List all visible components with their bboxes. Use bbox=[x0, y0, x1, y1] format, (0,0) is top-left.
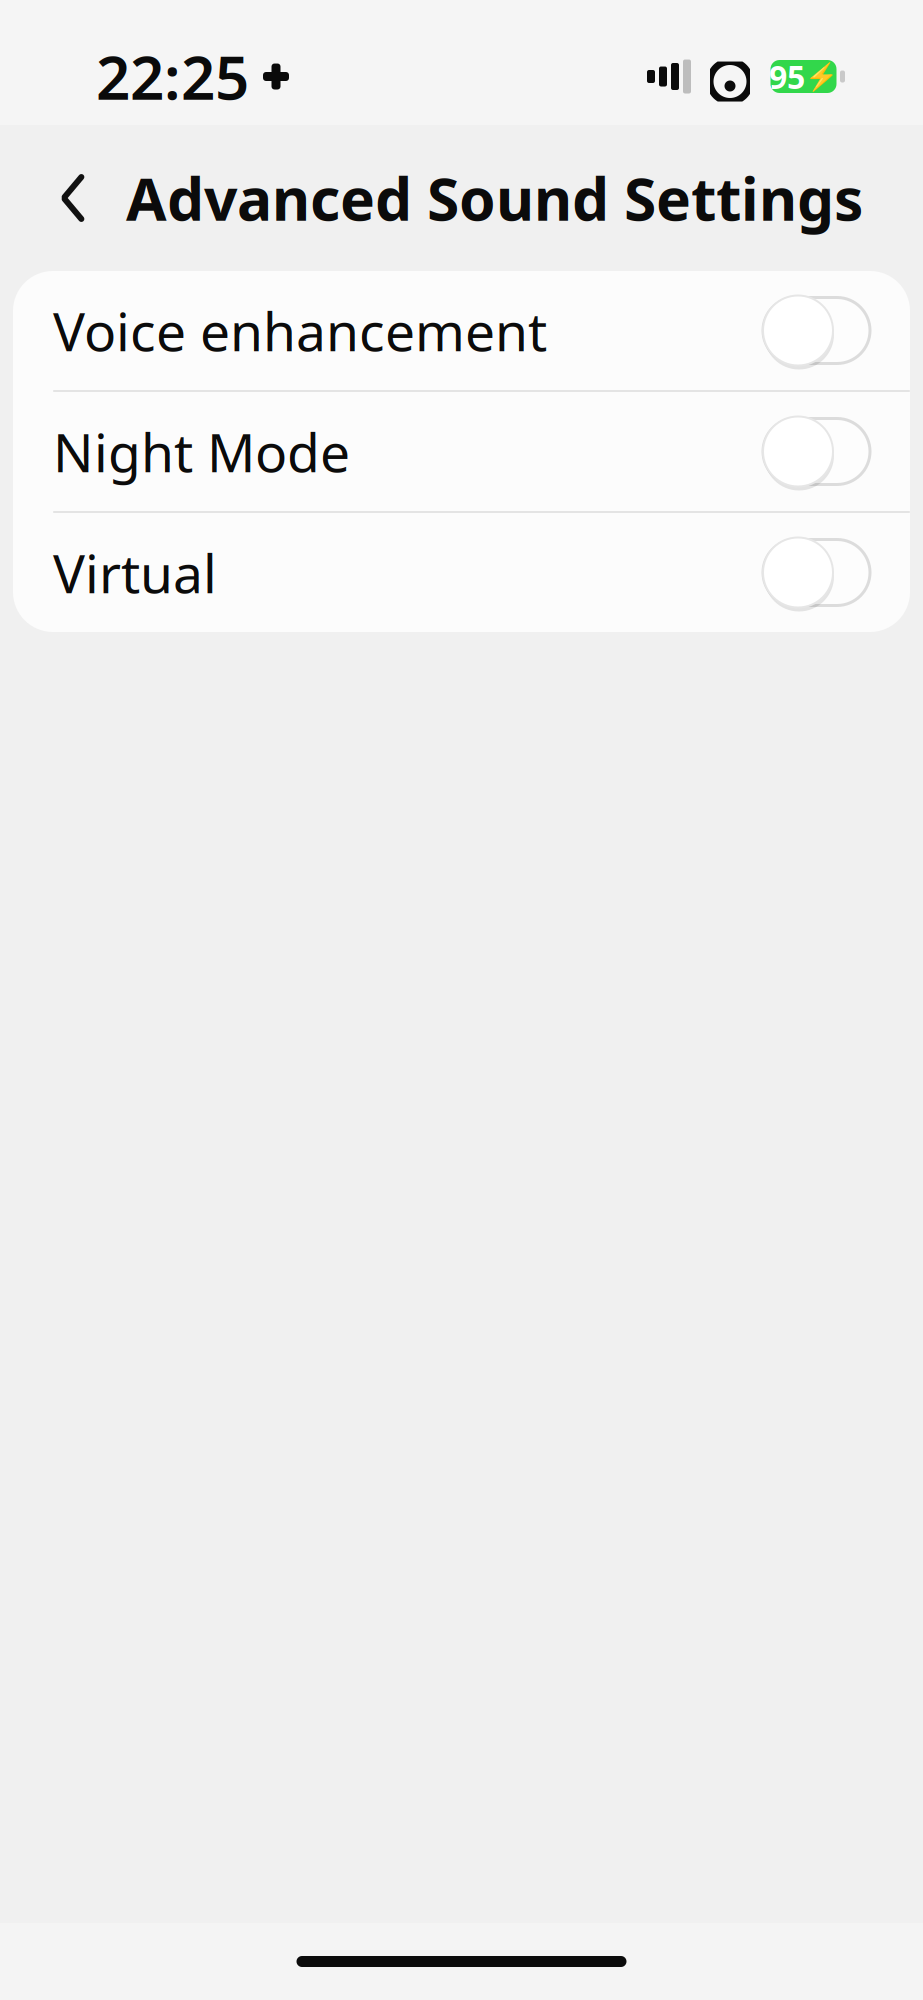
staticText: Voice enhancement bbox=[53, 295, 547, 366]
button[interactable]: Back bbox=[36, 161, 110, 235]
button[interactable]: Virtual bbox=[13, 513, 910, 632]
button[interactable]: Night Mode bbox=[13, 392, 910, 511]
staticText: 95 bbox=[769, 55, 805, 98]
staticText: 22:25 bbox=[96, 37, 249, 116]
staticText: Virtual bbox=[53, 537, 217, 608]
staticText: Advanced Sound Settings bbox=[126, 159, 863, 237]
button[interactable]: Voice enhancement bbox=[13, 271, 910, 390]
staticText: ⚡ bbox=[805, 61, 838, 92]
staticText: Night Mode bbox=[53, 416, 350, 487]
